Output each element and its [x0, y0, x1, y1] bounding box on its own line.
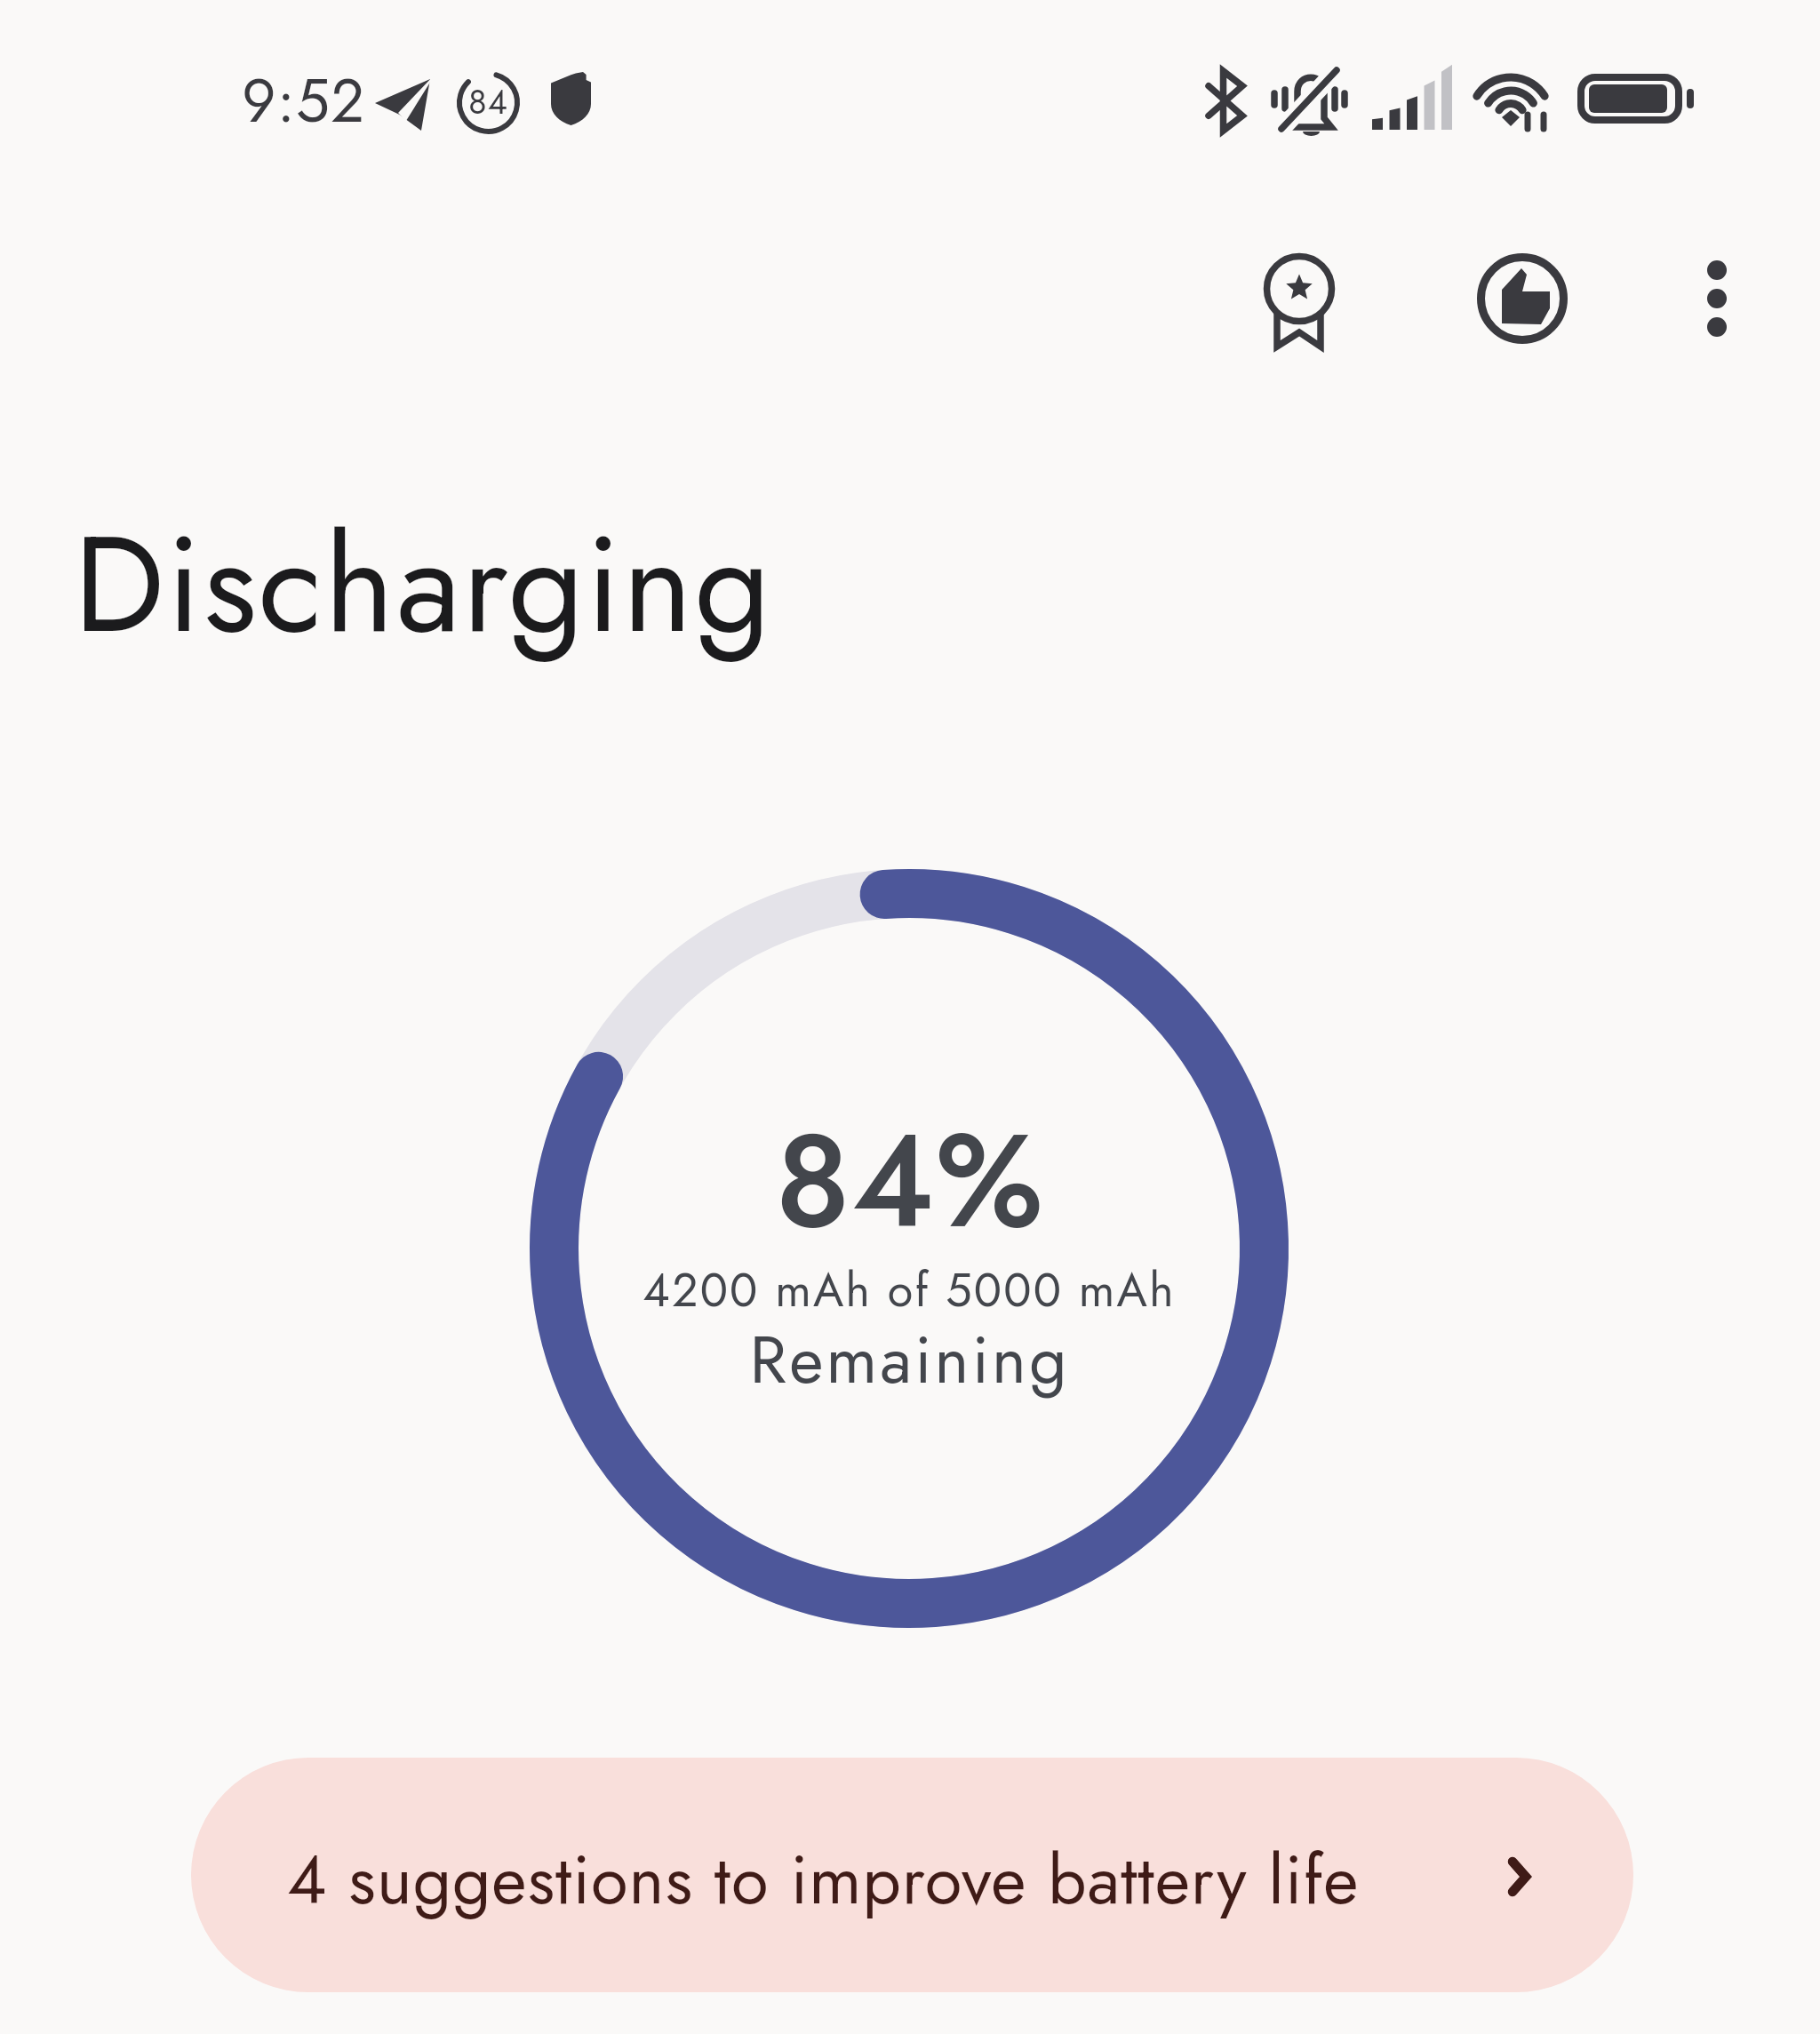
staticText: Discharging [74, 488, 773, 681]
button[interactable]: Battery saver award [1242, 235, 1356, 348]
button[interactable]: 4 suggestions to improve battery life [191, 1758, 1633, 1992]
button[interactable]: Send feedback [1465, 243, 1579, 357]
staticText: 9:52 [242, 58, 366, 144]
staticText: 84% [775, 1088, 1044, 1275]
button[interactable]: More options [1662, 243, 1772, 354]
staticText: Remaining [749, 1312, 1070, 1408]
staticText: 4 suggestions to improve battery life [287, 1831, 1360, 1929]
staticText: 84 [468, 77, 508, 126]
staticText: 4200 mAh of 5000 mAh [643, 1256, 1176, 1323]
